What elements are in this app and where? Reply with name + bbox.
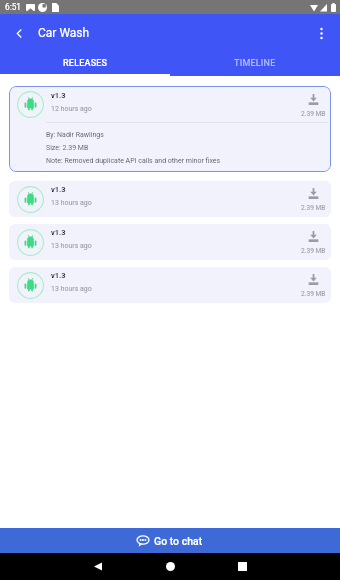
button[interactable]: Download [299,186,327,200]
staticText: Size: 2.39 MB [46,144,89,152]
staticText: By: Nadir Rawlings [46,131,104,139]
button[interactable]: TIMELINE [170,51,340,76]
staticText: v1.3 [51,91,66,100]
button[interactable]: Home [155,553,185,580]
button[interactable]: Download [299,229,327,243]
button[interactable]: Recents [227,553,257,580]
button[interactable]: v1.3 [9,86,331,172]
button[interactable]: Back [7,21,31,45]
button[interactable]: v1.3 [9,181,331,217]
button[interactable]: v1.3 [9,224,331,260]
staticText: v1.3 [51,185,66,194]
staticText: 6:51 [5,2,21,12]
staticText: 13 hours ago [51,285,92,293]
staticText: 13 hours ago [51,242,92,250]
staticText: 12 hours ago [51,105,92,113]
staticText: 2.39 MB [301,110,326,118]
staticText: v1.3 [51,271,66,280]
staticText: Go to chat [154,535,203,547]
button[interactable]: Go to chat [0,528,340,553]
button[interactable]: Download [299,92,327,106]
staticText: RELEASES [63,58,108,69]
button[interactable]: More options [308,21,332,45]
staticText: Car Wash [38,26,90,40]
button[interactable]: Back [83,553,113,580]
staticText: 13 hours ago [51,199,92,207]
staticText: Note: Removed duplicate API calls and ot… [46,157,221,165]
staticText: 2.39 MB [301,290,326,298]
staticText: TIMELINE [234,58,276,69]
staticText: v1.3 [51,228,66,237]
button[interactable]: RELEASES [0,51,170,76]
button[interactable]: v1.3 [9,267,331,303]
staticText: 2.39 MB [301,247,326,255]
staticText: 2.39 MB [301,204,326,212]
button[interactable]: Download [299,272,327,286]
